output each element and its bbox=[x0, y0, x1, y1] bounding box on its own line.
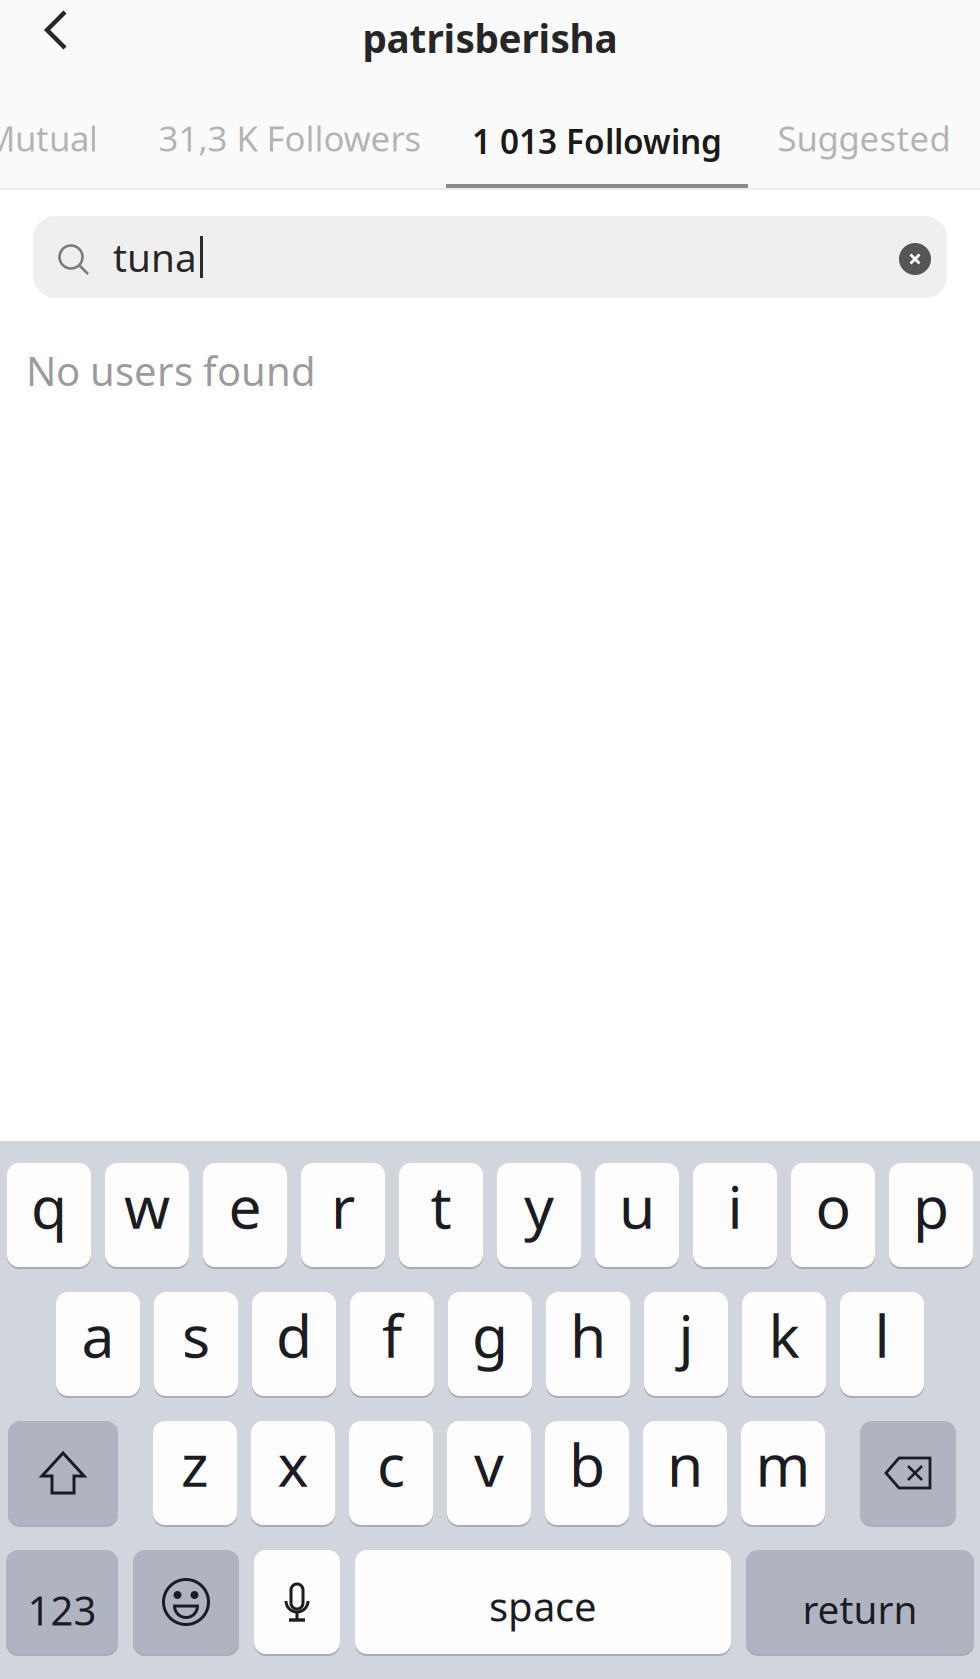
button[interactable]: Delete bbox=[860, 1418, 956, 1528]
staticText: t bbox=[430, 1167, 451, 1245]
button[interactable]: h bbox=[546, 1289, 630, 1399]
button[interactable]: t bbox=[399, 1160, 483, 1270]
staticText: No users found bbox=[26, 344, 316, 397]
staticText: d bbox=[276, 1296, 312, 1374]
button[interactable]: 123 bbox=[6, 1547, 118, 1657]
button[interactable]: return bbox=[746, 1547, 974, 1657]
button[interactable]: j bbox=[644, 1289, 728, 1399]
staticText: g bbox=[472, 1296, 508, 1374]
staticText: m bbox=[755, 1425, 810, 1503]
staticText: z bbox=[181, 1425, 209, 1503]
staticText: w bbox=[124, 1167, 170, 1245]
staticText: u bbox=[619, 1167, 655, 1245]
button[interactable]: Dictation bbox=[254, 1547, 340, 1657]
button[interactable]: 1 013 Following bbox=[446, 92, 748, 190]
button[interactable]: space bbox=[355, 1547, 731, 1657]
button[interactable]: Back bbox=[0, 0, 112, 88]
staticText: v bbox=[474, 1425, 504, 1503]
button[interactable]: f bbox=[350, 1289, 434, 1399]
button[interactable]: x bbox=[251, 1418, 335, 1528]
button[interactable]: b bbox=[545, 1418, 629, 1528]
staticText: space bbox=[489, 1579, 597, 1632]
staticText: Mutual bbox=[0, 115, 98, 161]
button[interactable]: a bbox=[56, 1289, 140, 1399]
staticText: 31,3 K Followers bbox=[158, 115, 421, 161]
button[interactable]: Emoji bbox=[133, 1547, 239, 1657]
button[interactable]: k bbox=[742, 1289, 826, 1399]
staticText: k bbox=[768, 1296, 799, 1374]
staticText: f bbox=[382, 1296, 402, 1374]
button[interactable]: q bbox=[7, 1160, 91, 1270]
button[interactable]: n bbox=[643, 1418, 727, 1528]
staticText: p bbox=[913, 1167, 949, 1245]
staticText: s bbox=[182, 1296, 210, 1374]
staticText: o bbox=[815, 1167, 850, 1245]
button[interactable]: d bbox=[252, 1289, 336, 1399]
button[interactable]: z bbox=[153, 1418, 237, 1528]
staticText: h bbox=[570, 1296, 606, 1374]
staticText: i bbox=[727, 1167, 742, 1245]
button[interactable]: m bbox=[741, 1418, 825, 1528]
button[interactable]: u bbox=[595, 1160, 679, 1270]
staticText: c bbox=[377, 1425, 405, 1503]
staticText: 123 bbox=[27, 1583, 96, 1636]
button[interactable]: Clear text bbox=[883, 216, 947, 298]
button[interactable]: 31,3 K Followers bbox=[140, 88, 440, 188]
staticText: l bbox=[874, 1296, 889, 1374]
button[interactable]: w bbox=[105, 1160, 189, 1270]
staticText: x bbox=[277, 1425, 308, 1503]
button[interactable]: c bbox=[349, 1418, 433, 1528]
staticText: r bbox=[331, 1167, 355, 1245]
button[interactable]: v bbox=[447, 1418, 531, 1528]
button[interactable]: s bbox=[154, 1289, 238, 1399]
button[interactable]: l bbox=[840, 1289, 924, 1399]
staticText: e bbox=[228, 1167, 261, 1245]
button[interactable]: o bbox=[791, 1160, 875, 1270]
staticText: Suggested bbox=[777, 115, 950, 161]
button[interactable]: y bbox=[497, 1160, 581, 1270]
staticText: b bbox=[569, 1425, 605, 1503]
button[interactable]: r bbox=[301, 1160, 385, 1270]
button[interactable]: g bbox=[448, 1289, 532, 1399]
staticText: n bbox=[667, 1425, 703, 1503]
button[interactable]: Mutual bbox=[0, 88, 98, 188]
staticText: y bbox=[524, 1167, 554, 1245]
staticText: q bbox=[31, 1167, 67, 1245]
button[interactable]: i bbox=[693, 1160, 777, 1270]
button[interactable]: e bbox=[203, 1160, 287, 1270]
button[interactable]: p bbox=[889, 1160, 973, 1270]
staticText: j bbox=[678, 1296, 693, 1374]
staticText: a bbox=[81, 1296, 114, 1374]
staticText: patrisberisha bbox=[362, 12, 617, 64]
staticText: tuna bbox=[113, 231, 197, 283]
button[interactable]: Shift bbox=[8, 1418, 118, 1528]
staticText: return bbox=[802, 1583, 917, 1635]
button[interactable]: Suggested bbox=[749, 88, 979, 188]
staticText: 1 013 Following bbox=[472, 119, 722, 163]
